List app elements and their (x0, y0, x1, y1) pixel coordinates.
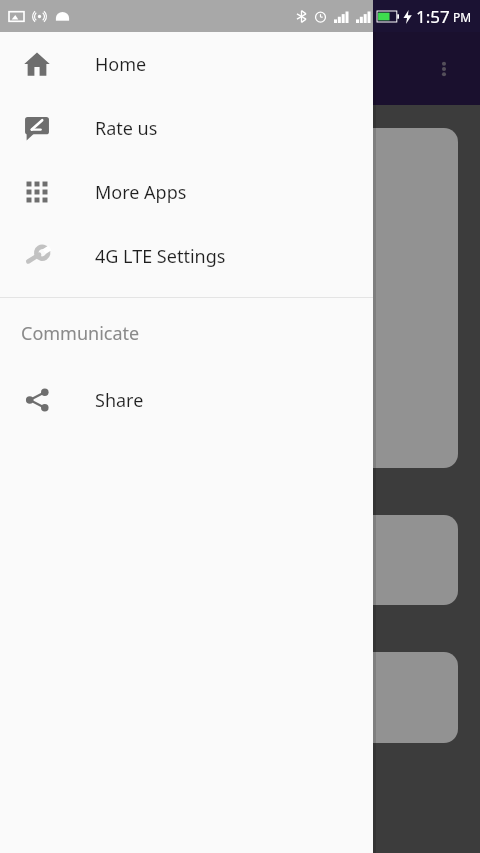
staticText: Rate us (95, 116, 158, 141)
button[interactable]: More Apps (0, 160, 373, 224)
button[interactable]: Rate us (0, 96, 373, 160)
button[interactable]: 4G LTE Settings (0, 224, 373, 288)
staticText: Share (95, 388, 144, 413)
staticText: More Apps (95, 180, 187, 205)
staticText: Communicate (21, 321, 140, 346)
staticText: 1:57 (416, 5, 450, 28)
staticText: 4G LTE Settings (95, 244, 226, 269)
button[interactable] (22, 652, 458, 743)
button[interactable] (22, 515, 458, 605)
button[interactable]: More options (424, 49, 464, 89)
staticText: Home (95, 52, 147, 77)
button[interactable]: Hidden (22, 128, 458, 468)
button[interactable]: Share (0, 368, 373, 432)
button[interactable]: Home (0, 32, 373, 96)
staticText: PM (453, 9, 472, 25)
staticText: Hidden (182, 249, 298, 295)
